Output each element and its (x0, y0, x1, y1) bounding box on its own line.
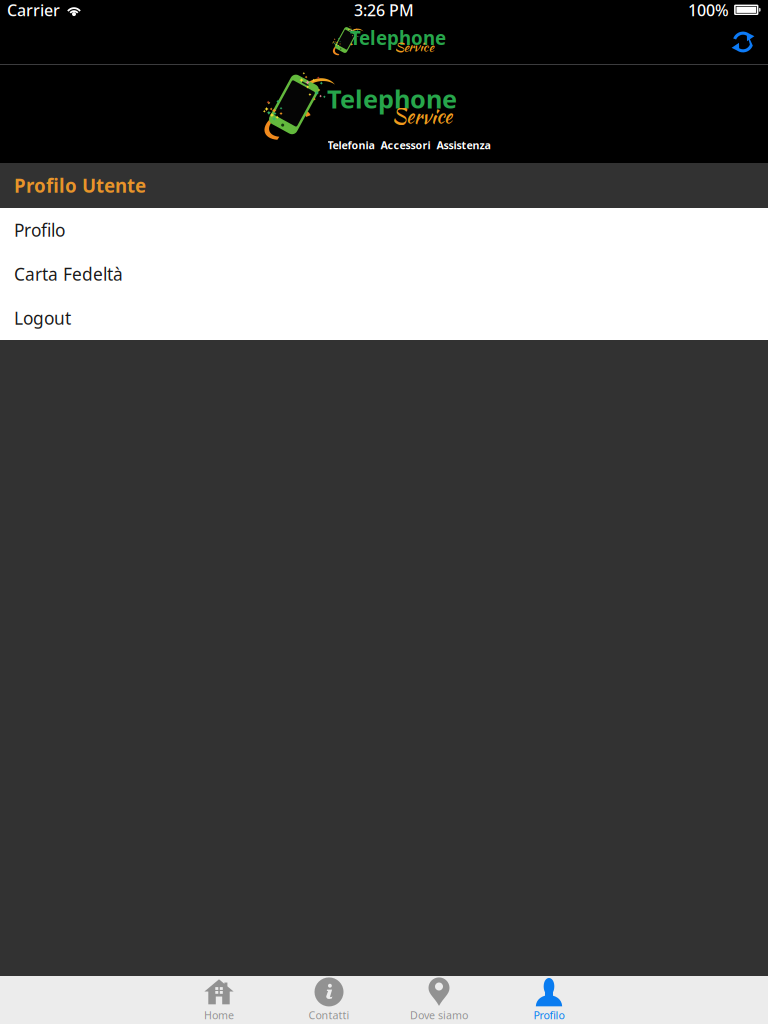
staticText: Profilo (533, 1008, 564, 1022)
button[interactable]: Carta Fedeltà (0, 252, 768, 296)
staticText: Profilo Utente (14, 173, 146, 198)
button[interactable]: Logout (0, 296, 768, 340)
button[interactable]: Contatti (274, 976, 384, 1024)
staticText: Telefonia Accessori Assistenza (327, 138, 490, 152)
staticText: Contatti (308, 1008, 349, 1022)
button[interactable]: Profilo (0, 208, 768, 252)
staticText: 3:26 PM (354, 0, 414, 21)
staticText: Profilo (14, 218, 65, 241)
staticText: Carrier (7, 0, 60, 21)
staticText: Logout (14, 306, 71, 329)
button[interactable]: Home (164, 976, 274, 1024)
staticText: Service (394, 37, 433, 56)
button[interactable]: Profilo (494, 976, 604, 1024)
staticText: Carta Fedeltà (14, 262, 123, 285)
button[interactable]: Aggiorna (718, 20, 768, 64)
staticText: Service (392, 102, 452, 131)
staticText: 100% (688, 0, 729, 21)
staticText: Telephone (350, 25, 446, 50)
staticText: Home (204, 1008, 234, 1022)
staticText: Dove siamo (410, 1008, 468, 1022)
button[interactable]: Dove siamo (384, 976, 494, 1024)
staticText: Telephone (327, 82, 457, 115)
